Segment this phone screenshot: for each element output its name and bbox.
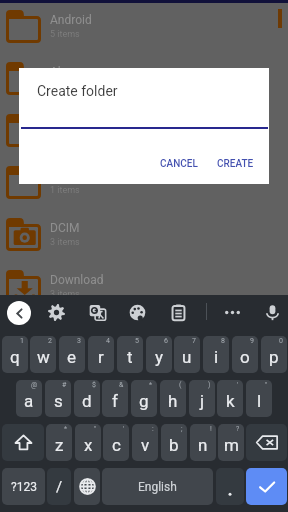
staticText: b (169, 435, 179, 455)
button[interactable]: 5 (117, 336, 143, 373)
staticText: v (141, 435, 150, 455)
button[interactable]: Audiobooks (0, 104, 288, 156)
staticText: 3 items (50, 237, 80, 248)
staticText: y (155, 347, 164, 367)
button[interactable]: 3 (59, 336, 85, 373)
button[interactable]: / (47, 468, 71, 505)
staticText: ?123 (11, 480, 37, 494)
button[interactable]: Clipboard (165, 299, 191, 325)
button[interactable]: " (246, 380, 272, 417)
staticText: ? (236, 425, 240, 433)
staticText: 3 (77, 337, 81, 345)
button[interactable]: CANCEL (152, 152, 206, 176)
staticText: 6 (164, 337, 168, 345)
staticText: i (214, 347, 219, 367)
staticText: a (24, 391, 34, 411)
button[interactable]: Period (216, 468, 244, 505)
button[interactable]: Enter (246, 468, 287, 505)
button[interactable]: Voice input (259, 299, 285, 325)
staticText: z (55, 435, 64, 455)
staticText: DCIM (50, 221, 80, 235)
staticText: d (82, 391, 92, 411)
staticText: f (112, 391, 118, 411)
button[interactable]: DCIM (0, 208, 288, 260)
staticText: h (168, 391, 178, 411)
staticText: m (224, 435, 239, 455)
button[interactable]: * (131, 380, 157, 417)
staticText: Alarms (50, 65, 89, 79)
staticText: w (37, 347, 50, 367)
staticText: 5 (135, 337, 139, 345)
staticText: 0 (279, 337, 283, 345)
staticText: g (139, 391, 149, 411)
button[interactable]: 9 (232, 336, 258, 373)
button[interactable]: ! (190, 424, 216, 461)
button[interactable]: English (102, 468, 213, 505)
staticText: $ (92, 381, 96, 389)
staticText: * (64, 425, 68, 433)
staticText: r (98, 347, 104, 367)
button[interactable]: : (132, 424, 158, 461)
staticText: o (240, 347, 250, 367)
button[interactable]: 4 (88, 336, 114, 373)
staticText: 1 (20, 337, 24, 345)
button[interactable]: Translate (84, 299, 110, 325)
button[interactable]: @ (16, 380, 42, 417)
button[interactable]: CREATE (209, 152, 262, 176)
button[interactable]: Change keyboard language (74, 468, 100, 505)
staticText: English (138, 480, 177, 494)
button[interactable]: Download (0, 260, 288, 312)
staticText: 3 items (50, 289, 80, 300)
button[interactable]: $ (74, 380, 100, 417)
button[interactable]: Themes (124, 299, 150, 325)
button[interactable]: 7 (174, 336, 200, 373)
staticText: / (56, 478, 63, 496)
staticText: ) (208, 381, 211, 389)
staticText: * (149, 381, 153, 389)
button[interactable]: & (102, 380, 128, 417)
staticText: " (94, 425, 97, 433)
button[interactable]: 1 (2, 336, 28, 373)
staticText: 8 (221, 337, 225, 345)
staticText: Create folder (37, 83, 118, 99)
button[interactable]: ) (189, 380, 215, 417)
staticText: x (84, 435, 93, 455)
staticText: p (269, 347, 279, 367)
button[interactable]: * (46, 424, 72, 461)
button[interactable]: ? (218, 424, 244, 461)
button[interactable]: More options (219, 299, 245, 325)
button[interactable]: Alarms (0, 52, 288, 104)
staticText: e (67, 347, 77, 367)
staticText: 5 items (50, 29, 80, 40)
button[interactable]: ' (103, 424, 129, 461)
staticText: 1 items (50, 185, 80, 196)
staticText: CANCEL (160, 158, 198, 170)
button[interactable]: Shift (2, 424, 44, 461)
button[interactable]: 6 (146, 336, 172, 373)
button[interactable]: ' (217, 380, 243, 417)
button[interactable]: 2 (30, 336, 56, 373)
staticText: 4 (106, 337, 110, 345)
button[interactable]: 8 (203, 336, 229, 373)
button[interactable]: ( (160, 380, 186, 417)
staticText: k (226, 391, 235, 411)
staticText: Download (50, 273, 104, 287)
staticText: 7 (192, 337, 196, 345)
button[interactable]: # (45, 380, 71, 417)
button[interactable]: Settings (43, 299, 69, 325)
staticText: ' (237, 381, 239, 389)
button[interactable]: 0 (261, 336, 287, 373)
button[interactable]: Books (0, 156, 288, 208)
button[interactable]: ; (161, 424, 187, 461)
staticText: : (152, 425, 154, 433)
button[interactable]: Android (0, 0, 288, 52)
staticText: t (127, 347, 133, 367)
button[interactable]: Hide keyboard (7, 301, 31, 325)
button[interactable]: ?123 (2, 468, 45, 505)
staticText: 0 items (50, 81, 80, 92)
button[interactable]: " (75, 424, 101, 461)
button[interactable]: Backspace (246, 424, 287, 461)
staticText: s (54, 391, 63, 411)
